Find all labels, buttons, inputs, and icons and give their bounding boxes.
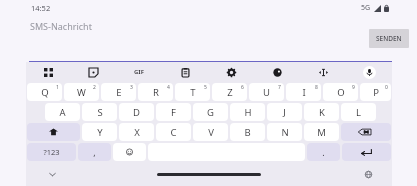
button[interactable]: W	[64, 83, 99, 101]
staticText: Q	[41, 86, 49, 99]
button[interactable]: GIF	[116, 62, 162, 82]
staticText: K	[319, 106, 325, 119]
staticText: SENDEN	[376, 34, 402, 43]
button[interactable]: A	[45, 103, 80, 121]
staticText: J	[283, 106, 286, 119]
staticText: W	[77, 86, 86, 99]
button[interactable]: Shift	[27, 123, 80, 141]
button[interactable]: Settings	[208, 62, 254, 82]
staticText: O	[337, 86, 345, 99]
button[interactable]: Voice input	[346, 62, 392, 82]
staticText: 9	[352, 84, 355, 91]
button[interactable]: ,	[78, 143, 111, 161]
button[interactable]: Clipboard	[162, 62, 208, 82]
button[interactable]: Change language	[360, 166, 376, 182]
staticText: T	[190, 86, 196, 99]
button[interactable]: Z	[212, 83, 247, 101]
staticText: 7	[278, 84, 281, 91]
staticText: M	[317, 126, 326, 139]
staticText: 5	[204, 84, 207, 91]
button[interactable]: L	[341, 103, 376, 121]
staticText: 5G	[361, 3, 371, 13]
button[interactable]: Y	[82, 123, 117, 141]
staticText: 8	[315, 84, 318, 91]
button[interactable]: Emoji	[113, 143, 146, 161]
staticText: 1	[56, 84, 59, 91]
staticText: ?123	[43, 147, 60, 157]
button[interactable]: M	[304, 123, 339, 141]
button[interactable]: T	[175, 83, 210, 101]
staticText: D	[133, 106, 140, 119]
staticText: 2	[93, 84, 96, 91]
staticText: GIF	[134, 68, 144, 76]
staticText: S	[97, 106, 103, 119]
staticText: B	[244, 126, 251, 139]
staticText: G	[207, 106, 214, 119]
button[interactable]: ?123	[27, 143, 76, 161]
button[interactable]: SENDEN	[369, 29, 409, 48]
button[interactable]: Q	[27, 83, 62, 101]
button[interactable]: Apps	[26, 62, 71, 82]
staticText: U	[263, 86, 270, 99]
staticText: I	[302, 86, 306, 99]
button[interactable]: F	[156, 103, 191, 121]
staticText: SMS-Nachricht	[30, 20, 92, 32]
button[interactable]: J	[267, 103, 302, 121]
staticText: .	[322, 146, 325, 158]
button[interactable]: G	[193, 103, 228, 121]
staticText: H	[244, 106, 252, 119]
button[interactable]: R	[138, 83, 173, 101]
staticText: R	[153, 86, 159, 99]
button[interactable]: S	[82, 103, 117, 121]
staticText: 6	[241, 84, 244, 91]
staticText: ,	[93, 146, 96, 158]
staticText: L	[356, 106, 361, 119]
button[interactable]: X	[119, 123, 154, 141]
button[interactable]: N	[267, 123, 302, 141]
staticText: C	[170, 126, 177, 139]
button[interactable]: E	[101, 83, 136, 101]
button[interactable]: .	[307, 143, 340, 161]
staticText: E	[116, 86, 122, 99]
button[interactable]: H	[230, 103, 265, 121]
button[interactable]: Hide keyboard	[44, 166, 60, 182]
staticText: F	[171, 106, 176, 119]
staticText: Z	[227, 86, 233, 99]
button[interactable]: U	[249, 83, 284, 101]
staticText: A	[59, 106, 66, 119]
button[interactable]: K	[304, 103, 339, 121]
button[interactable]: Enter	[342, 143, 391, 161]
staticText: P	[373, 86, 379, 99]
staticText: Y	[97, 126, 103, 139]
staticText: V	[208, 126, 214, 139]
button[interactable]: I	[286, 83, 321, 101]
button[interactable]: Theme	[254, 62, 300, 82]
staticText: 14:52	[31, 3, 51, 13]
button[interactable]: V	[193, 123, 228, 141]
button[interactable]: C	[156, 123, 191, 141]
button[interactable]: D	[119, 103, 154, 121]
button[interactable]: Sticker	[71, 62, 116, 82]
button[interactable]: P	[360, 83, 391, 101]
button[interactable]: Text editing	[300, 62, 346, 82]
staticText: X	[134, 126, 140, 139]
button[interactable]: Backspace	[341, 123, 391, 141]
button[interactable]: O	[323, 83, 358, 101]
staticText: 3	[130, 84, 133, 91]
staticText: N	[281, 126, 289, 139]
staticText: 4	[167, 84, 170, 91]
button[interactable]: B	[230, 123, 265, 141]
staticText: 0	[385, 84, 388, 91]
